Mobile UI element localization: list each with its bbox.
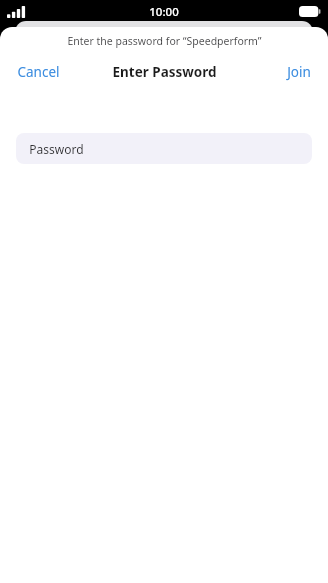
other: Cellular signal xyxy=(7,6,27,18)
button[interactable]: Cancel xyxy=(0,56,77,88)
staticText: 10:00 xyxy=(149,4,179,20)
staticText: Join xyxy=(287,63,311,81)
staticText: Enter the password for “Speedperform” xyxy=(67,34,262,48)
other: Battery xyxy=(299,6,321,17)
staticText: Cancel xyxy=(17,63,60,81)
staticText: Enter Password xyxy=(112,63,217,81)
button[interactable]: Password xyxy=(16,133,312,164)
button[interactable]: Join xyxy=(270,56,328,88)
staticText: Password xyxy=(29,141,84,157)
